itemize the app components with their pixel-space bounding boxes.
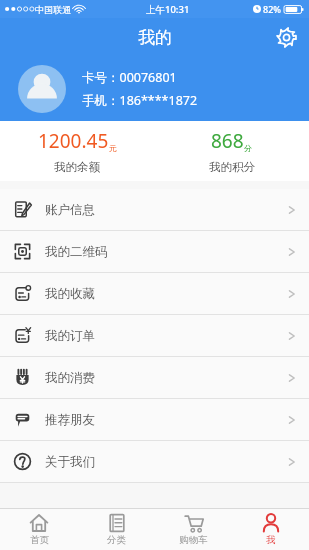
button[interactable]: 我 <box>232 509 309 550</box>
staticText: 中国联通 <box>35 4 71 15</box>
staticText: 元 <box>109 143 117 153</box>
button[interactable]: 关于我们 <box>0 441 309 482</box>
staticText: 82% <box>263 3 281 15</box>
button[interactable]: 我的订单 <box>0 315 309 356</box>
staticText: 账户信息 <box>45 202 95 218</box>
staticText: 我的消费 <box>45 370 95 386</box>
staticText: 868 <box>211 128 244 154</box>
button[interactable]: 推荐朋友 <box>0 399 309 440</box>
staticText: 1200.45 <box>38 128 109 154</box>
staticText: 我的积分 <box>209 160 255 174</box>
staticText: 关于我们 <box>45 454 95 470</box>
button[interactable]: 账户信息 <box>0 189 309 230</box>
button[interactable]: 购物车 <box>155 509 232 550</box>
staticText: 上午10:31 <box>146 3 190 16</box>
button[interactable]: 首页 <box>0 509 78 550</box>
button[interactable]: 1200.45 <box>0 121 154 181</box>
staticText: 我的二维码 <box>45 244 108 260</box>
staticText: 手机：186****1872 <box>82 92 198 109</box>
button[interactable]: 卡号：00076801 <box>0 56 309 121</box>
staticText: 首页 <box>30 534 49 546</box>
staticText: 卡号：00076801 <box>82 69 177 86</box>
staticText: 我的 <box>138 27 172 48</box>
staticText: 分 <box>244 143 252 153</box>
staticText: 我 <box>266 534 276 546</box>
staticText: 购物车 <box>179 534 208 546</box>
button[interactable]: 我的收藏 <box>0 273 309 314</box>
staticText: 分类 <box>107 534 126 546</box>
staticText: 我的订单 <box>45 328 95 344</box>
button[interactable]: 我的消费 <box>0 357 309 398</box>
button[interactable]: 我的二维码 <box>0 231 309 272</box>
staticText: 我的收藏 <box>45 286 95 302</box>
button[interactable]: Settings <box>271 22 301 52</box>
button[interactable]: 868 <box>154 121 309 181</box>
staticText: 推荐朋友 <box>45 412 95 428</box>
button[interactable]: 分类 <box>78 509 155 550</box>
staticText: 我的余额 <box>54 160 100 174</box>
